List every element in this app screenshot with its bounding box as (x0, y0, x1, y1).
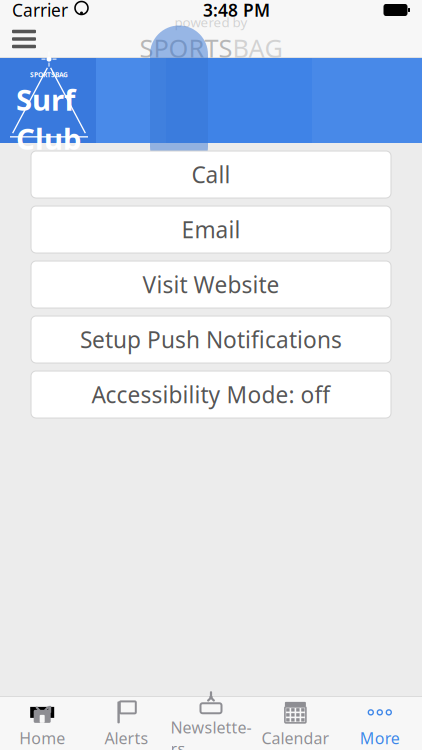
staticText: Alerts (105, 727, 149, 749)
staticText: Surf Club (16, 80, 82, 158)
staticText: SPORTSBAG (30, 70, 68, 79)
staticText: More (360, 727, 400, 749)
staticText: Carrier (12, 0, 68, 21)
button[interactable]: More (338, 697, 422, 750)
button[interactable]: Menu (0, 22, 48, 56)
staticText: Accessibility Mode: off (91, 379, 330, 409)
staticText: Newsletters (170, 717, 251, 750)
button[interactable]: Setup Push Notifications (31, 316, 391, 363)
button[interactable]: Calendar (253, 697, 338, 750)
button[interactable]: Alerts (84, 697, 169, 750)
staticText: Email (181, 214, 240, 244)
button[interactable]: Visit Website (31, 261, 391, 308)
button[interactable]: Accessibility Mode: off (31, 371, 391, 418)
staticText: 3:48 PM (203, 0, 270, 21)
button[interactable]: Call (31, 151, 391, 198)
button[interactable]: Newsletters (169, 697, 253, 750)
staticText: Call (191, 159, 230, 189)
staticText: powered by (174, 13, 247, 31)
button[interactable]: Email (31, 206, 391, 253)
staticText: Setup Push Notifications (80, 324, 342, 354)
staticText: BAG (232, 31, 282, 65)
staticText: SPORTS (139, 31, 232, 65)
staticText: Calendar (261, 727, 329, 749)
staticText: Visit Website (142, 269, 279, 299)
staticText: Home (19, 727, 65, 749)
button[interactable]: Home (0, 697, 84, 750)
